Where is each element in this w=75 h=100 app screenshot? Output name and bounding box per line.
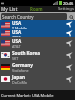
staticText: 20:46 xyxy=(63,1,74,6)
staticText: USA xyxy=(12,38,22,44)
button[interactable]: USA xyxy=(0,37,75,49)
staticText: T-Mobile xyxy=(12,26,27,29)
staticText: My List xyxy=(1,6,18,12)
staticText: Settings xyxy=(58,6,74,12)
button[interactable]: USA xyxy=(0,29,75,37)
staticText: SKT xyxy=(12,56,19,61)
button[interactable]: Search xyxy=(68,14,74,20)
button[interactable]: USA xyxy=(0,20,75,29)
staticText: DoCoMo xyxy=(12,80,28,85)
staticText: Roam xyxy=(30,6,43,12)
staticText: Japan xyxy=(12,74,25,80)
staticText: USA xyxy=(12,29,22,35)
button[interactable]: Germany xyxy=(0,61,75,73)
staticText: USA xyxy=(12,20,22,26)
button[interactable]: Japan xyxy=(0,73,75,85)
staticText: Vodafone xyxy=(12,68,29,73)
staticText: Search Country xyxy=(2,14,34,20)
button[interactable]: Search Country xyxy=(1,13,67,20)
staticText: AT&T xyxy=(12,35,21,37)
staticText: Current Market: USA Mobile xyxy=(1,93,54,98)
staticText: AT&T xyxy=(12,44,21,49)
staticText: South Korea xyxy=(12,50,40,56)
button[interactable]: South Korea xyxy=(0,49,75,61)
staticText: Germany xyxy=(12,62,33,68)
